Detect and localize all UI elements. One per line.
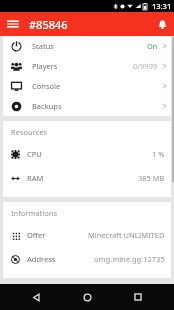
- button[interactable]: Status: [3, 36, 171, 56]
- staticText: omg.mine.gg:12735: [94, 254, 165, 264]
- button[interactable]: Offer: [3, 223, 171, 247]
- staticText: Offer: [27, 230, 46, 240]
- staticText: On: [147, 41, 158, 51]
- staticText: Players: [32, 61, 58, 71]
- button[interactable]: Notifications: [153, 15, 171, 33]
- button[interactable]: Players: [3, 56, 171, 76]
- button[interactable]: Back: [21, 284, 51, 310]
- staticText: Resources: [11, 127, 48, 137]
- staticText: Minecraft UNLIMITED: [88, 230, 165, 240]
- staticText: 0/9999: [133, 61, 158, 71]
- staticText: RAM: [27, 173, 44, 183]
- button[interactable]: Recent apps: [123, 284, 153, 310]
- button[interactable]: Backups: [3, 96, 171, 116]
- button[interactable]: Console: [3, 76, 171, 96]
- button[interactable]: Open navigation menu: [4, 15, 22, 33]
- staticText: 13:31: [152, 1, 172, 11]
- button[interactable]: Home: [72, 284, 102, 310]
- staticText: 385 MB: [138, 173, 165, 183]
- staticText: Console: [32, 81, 61, 91]
- staticText: #85846: [29, 17, 68, 32]
- staticText: Informations: [11, 208, 58, 218]
- staticText: Address: [27, 254, 56, 264]
- staticText: CPU: [27, 149, 42, 159]
- staticText: 1 %: [152, 149, 165, 159]
- button[interactable]: Address: [3, 247, 171, 271]
- staticText: Status: [32, 41, 54, 51]
- button[interactable]: RAM: [3, 166, 171, 190]
- staticText: Backups: [32, 101, 62, 111]
- button[interactable]: CPU: [3, 142, 171, 166]
